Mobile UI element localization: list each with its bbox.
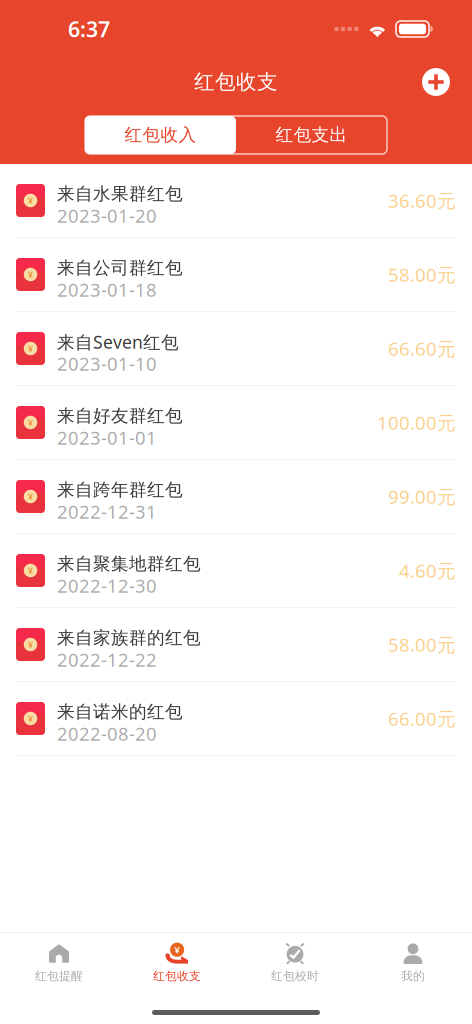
staticText: 2023-01-20 bbox=[57, 203, 157, 228]
staticText: 2023-01-10 bbox=[57, 351, 157, 376]
staticText: 6:37 bbox=[68, 14, 110, 44]
staticText: 来自水果群红包 bbox=[57, 183, 183, 205]
staticText: 来自公司群红包 bbox=[57, 257, 183, 279]
button[interactable]: ¥ bbox=[0, 312, 472, 386]
staticText: 来自跨年群红包 bbox=[57, 479, 183, 501]
button[interactable]: 添加 bbox=[414, 60, 458, 104]
staticText: 58.00元 bbox=[388, 262, 456, 287]
staticText: 2023-01-18 bbox=[57, 277, 157, 302]
staticText: 66.60元 bbox=[388, 336, 456, 361]
staticText: 我的 bbox=[401, 969, 425, 983]
staticText: 36.60元 bbox=[388, 188, 456, 213]
button[interactable]: ¥ bbox=[0, 386, 472, 460]
button[interactable]: 红包提醒 bbox=[0, 937, 118, 989]
staticText: 红包提醒 bbox=[35, 969, 83, 983]
staticText: 来自好友群红包 bbox=[57, 405, 183, 427]
button[interactable]: 红包支出 bbox=[236, 116, 387, 154]
staticText: ¥ bbox=[28, 195, 33, 206]
button[interactable]: ¥ bbox=[0, 164, 472, 238]
button[interactable]: 红包收入 bbox=[85, 116, 236, 154]
staticText: ¥ bbox=[28, 343, 33, 354]
staticText: 红包支出 bbox=[275, 124, 347, 146]
staticText: ¥ bbox=[28, 417, 33, 428]
staticText: 红包收支 bbox=[194, 69, 278, 95]
staticText: ¥ bbox=[28, 639, 33, 650]
staticText: 100.00元 bbox=[377, 410, 456, 435]
staticText: 99.00元 bbox=[388, 484, 456, 509]
staticText: 红包收支 bbox=[153, 969, 201, 983]
staticText: ¥ bbox=[28, 713, 33, 724]
button[interactable]: ¥ bbox=[0, 238, 472, 312]
staticText: 来自诺米的红包 bbox=[57, 701, 183, 723]
button[interactable]: ¥ bbox=[0, 460, 472, 534]
staticText: 66.00元 bbox=[388, 706, 456, 731]
staticText: 2022-12-30 bbox=[57, 573, 157, 598]
button[interactable]: ¥ bbox=[118, 937, 236, 989]
staticText: 2023-01-01 bbox=[57, 425, 157, 450]
staticText: 58.00元 bbox=[388, 632, 456, 657]
staticText: 来自聚集地群红包 bbox=[57, 553, 201, 575]
staticText: ¥ bbox=[28, 491, 33, 502]
staticText: 红包校时 bbox=[271, 969, 319, 983]
staticText: ¥ bbox=[28, 565, 33, 576]
staticText: 来自家族群的红包 bbox=[57, 627, 201, 649]
button[interactable]: 红包校时 bbox=[236, 937, 354, 989]
staticText: 2022-12-22 bbox=[57, 647, 157, 672]
button[interactable]: ¥ bbox=[0, 682, 472, 756]
button[interactable]: ¥ bbox=[0, 608, 472, 682]
button[interactable]: ¥ bbox=[0, 534, 472, 608]
staticText: 4.60元 bbox=[399, 558, 456, 583]
staticText: 2022-12-31 bbox=[57, 499, 157, 524]
staticText: 来自Seven红包 bbox=[57, 330, 179, 354]
button[interactable]: 我的 bbox=[354, 937, 472, 989]
staticText: 红包收入 bbox=[124, 124, 196, 146]
staticText: ¥ bbox=[174, 943, 179, 956]
staticText: ¥ bbox=[28, 269, 33, 280]
staticText: 2022-08-20 bbox=[57, 721, 157, 746]
